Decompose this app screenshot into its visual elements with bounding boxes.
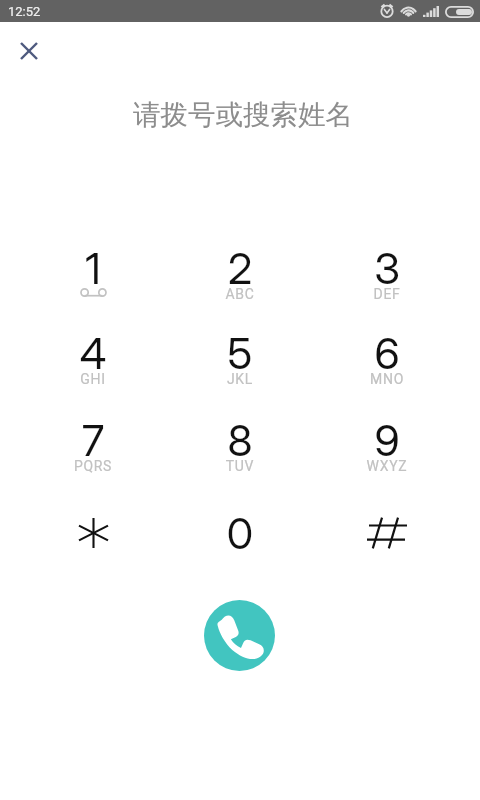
staticText: 5 (170, 327, 310, 379)
staticText: MNO (317, 371, 457, 387)
staticText: DEF (317, 286, 457, 302)
staticText: TUV (170, 458, 310, 474)
staticText: JKL (170, 371, 310, 387)
staticText: 4 (23, 327, 163, 379)
button[interactable]: 8 (170, 410, 310, 488)
staticText: ABC (170, 286, 310, 302)
button[interactable]: 0 (170, 503, 310, 581)
button[interactable]: 9 (317, 410, 457, 488)
button[interactable]: 4 (23, 323, 163, 401)
staticText: PQRS (23, 458, 163, 474)
button[interactable]: Close (8, 30, 50, 72)
button[interactable]: 6 (317, 323, 457, 401)
staticText: 3 (317, 242, 457, 294)
staticText: 7 (23, 414, 163, 466)
button[interactable]: 2 (170, 238, 310, 316)
button[interactable] (317, 503, 457, 581)
staticText: 2 (170, 242, 310, 294)
staticText: WXYZ (317, 458, 457, 474)
staticText: 8 (170, 414, 310, 466)
staticText: GHI (23, 371, 163, 387)
button[interactable]: Call (204, 600, 275, 671)
staticText: 6 (317, 327, 457, 379)
button[interactable] (23, 503, 163, 581)
staticText: 12:52 (8, 4, 41, 19)
button[interactable]: 7 (23, 410, 163, 488)
staticText: 1 (23, 242, 163, 294)
staticText: 请拨号或搜索姓名 (3, 98, 480, 133)
staticText: 9 (317, 414, 457, 466)
staticText: 0 (170, 507, 310, 559)
button[interactable]: 3 (317, 238, 457, 316)
button[interactable]: 5 (170, 323, 310, 401)
button[interactable]: 1 (23, 238, 163, 316)
